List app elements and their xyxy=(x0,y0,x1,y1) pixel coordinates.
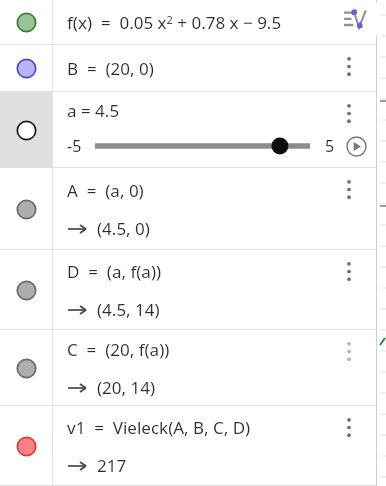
button[interactable]: Toggle visibility xyxy=(0,406,52,486)
button[interactable]: More options xyxy=(335,50,363,82)
staticText: 217 xyxy=(97,454,127,477)
staticText: C = (20, f(a)) xyxy=(67,338,170,361)
staticText: B = (20, 0) xyxy=(67,57,154,80)
staticText: v1 = Vieleck(A, B, C, D) xyxy=(67,416,251,439)
staticText: (20, 14) xyxy=(97,376,156,399)
button[interactable]: Toggle visibility xyxy=(0,92,52,168)
button[interactable]: D = (a, f(a)) xyxy=(53,250,376,330)
button[interactable]: Toggle visibility xyxy=(0,168,52,250)
button[interactable]: Toggle visibility xyxy=(0,250,52,330)
button[interactable]: More options xyxy=(335,255,363,287)
button[interactable]: Toggle visibility xyxy=(0,330,52,406)
button[interactable]: f(x) = 0.05 x2 + 0.78 x − 9.5 xyxy=(53,0,376,45)
staticText: -5 xyxy=(67,135,82,157)
button[interactable]: A = (a, 0) xyxy=(53,168,376,250)
button[interactable]: B = (20, 0) xyxy=(53,45,376,92)
button[interactable]: Play animation xyxy=(346,136,367,157)
staticText: f(x) = 0.05 x2 + 0.78 x − 9.5 xyxy=(67,11,282,34)
button[interactable]: More options xyxy=(335,411,363,443)
button[interactable]: More options xyxy=(335,173,363,205)
button[interactable]: Toggle visibility xyxy=(0,0,52,45)
staticText: 5 xyxy=(325,135,335,157)
staticText: (4.5, 14) xyxy=(97,298,160,321)
button[interactable]: Slider a xyxy=(95,135,310,157)
button[interactable]: C = (20, f(a)) xyxy=(53,330,376,406)
button[interactable]: More options xyxy=(335,97,363,129)
button[interactable]: More options xyxy=(335,335,363,367)
button[interactable]: Toggle visibility xyxy=(0,45,52,92)
button[interactable]: v1 = Vieleck(A, B, C, D) xyxy=(53,406,376,486)
staticText: D = (a, f(a)) xyxy=(67,260,162,283)
button[interactable]: Toggle algebra and graphics view xyxy=(335,1,377,38)
staticText: a = 4.5 xyxy=(67,99,120,122)
staticText: A = (a, 0) xyxy=(67,179,144,202)
staticText: (4.5, 0) xyxy=(97,217,150,240)
